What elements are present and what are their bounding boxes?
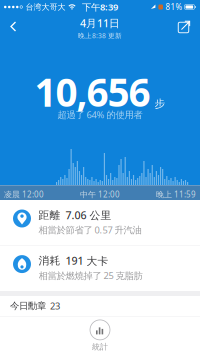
staticText: 步 bbox=[154, 97, 165, 110]
staticText: 81% bbox=[165, 2, 182, 12]
staticText: 7.06 公里 bbox=[65, 208, 111, 222]
staticText: 今日勳章 bbox=[10, 300, 46, 312]
staticText: 相當於節省了 0.57 升汽油 bbox=[38, 224, 141, 236]
staticText: 中午 12:00 bbox=[80, 189, 120, 200]
staticText: 下午8:39 bbox=[82, 1, 118, 13]
button[interactable]: 距離 bbox=[0, 200, 200, 245]
staticText: 消耗 bbox=[38, 254, 60, 267]
button[interactable]: 返回 bbox=[0, 14, 19, 39]
button[interactable]: 分享 bbox=[178, 14, 200, 39]
staticText: 統計 bbox=[92, 342, 108, 352]
staticText: 晚上8:38 更新 bbox=[78, 31, 122, 40]
button[interactable]: 統計 bbox=[90, 320, 110, 352]
staticText: 台湾大哥大 bbox=[25, 2, 65, 12]
staticText: 相當於燃燒掉了 25 克脂肪 bbox=[38, 269, 142, 282]
staticText: 23 bbox=[50, 300, 60, 312]
staticText: 4月11日 bbox=[80, 16, 120, 30]
staticText: 191 大卡 bbox=[65, 254, 108, 268]
button[interactable]: 消耗 bbox=[0, 246, 200, 291]
button[interactable]: 今日勳章 bbox=[0, 296, 200, 316]
staticText: 超過了 64% 的使用者 bbox=[57, 108, 142, 121]
staticText: 凌晨 12:00 bbox=[4, 189, 44, 200]
staticText: 距離 bbox=[38, 208, 60, 222]
staticText: 10,656 bbox=[34, 66, 150, 117]
staticText: 晚上 11:59 bbox=[156, 189, 196, 200]
